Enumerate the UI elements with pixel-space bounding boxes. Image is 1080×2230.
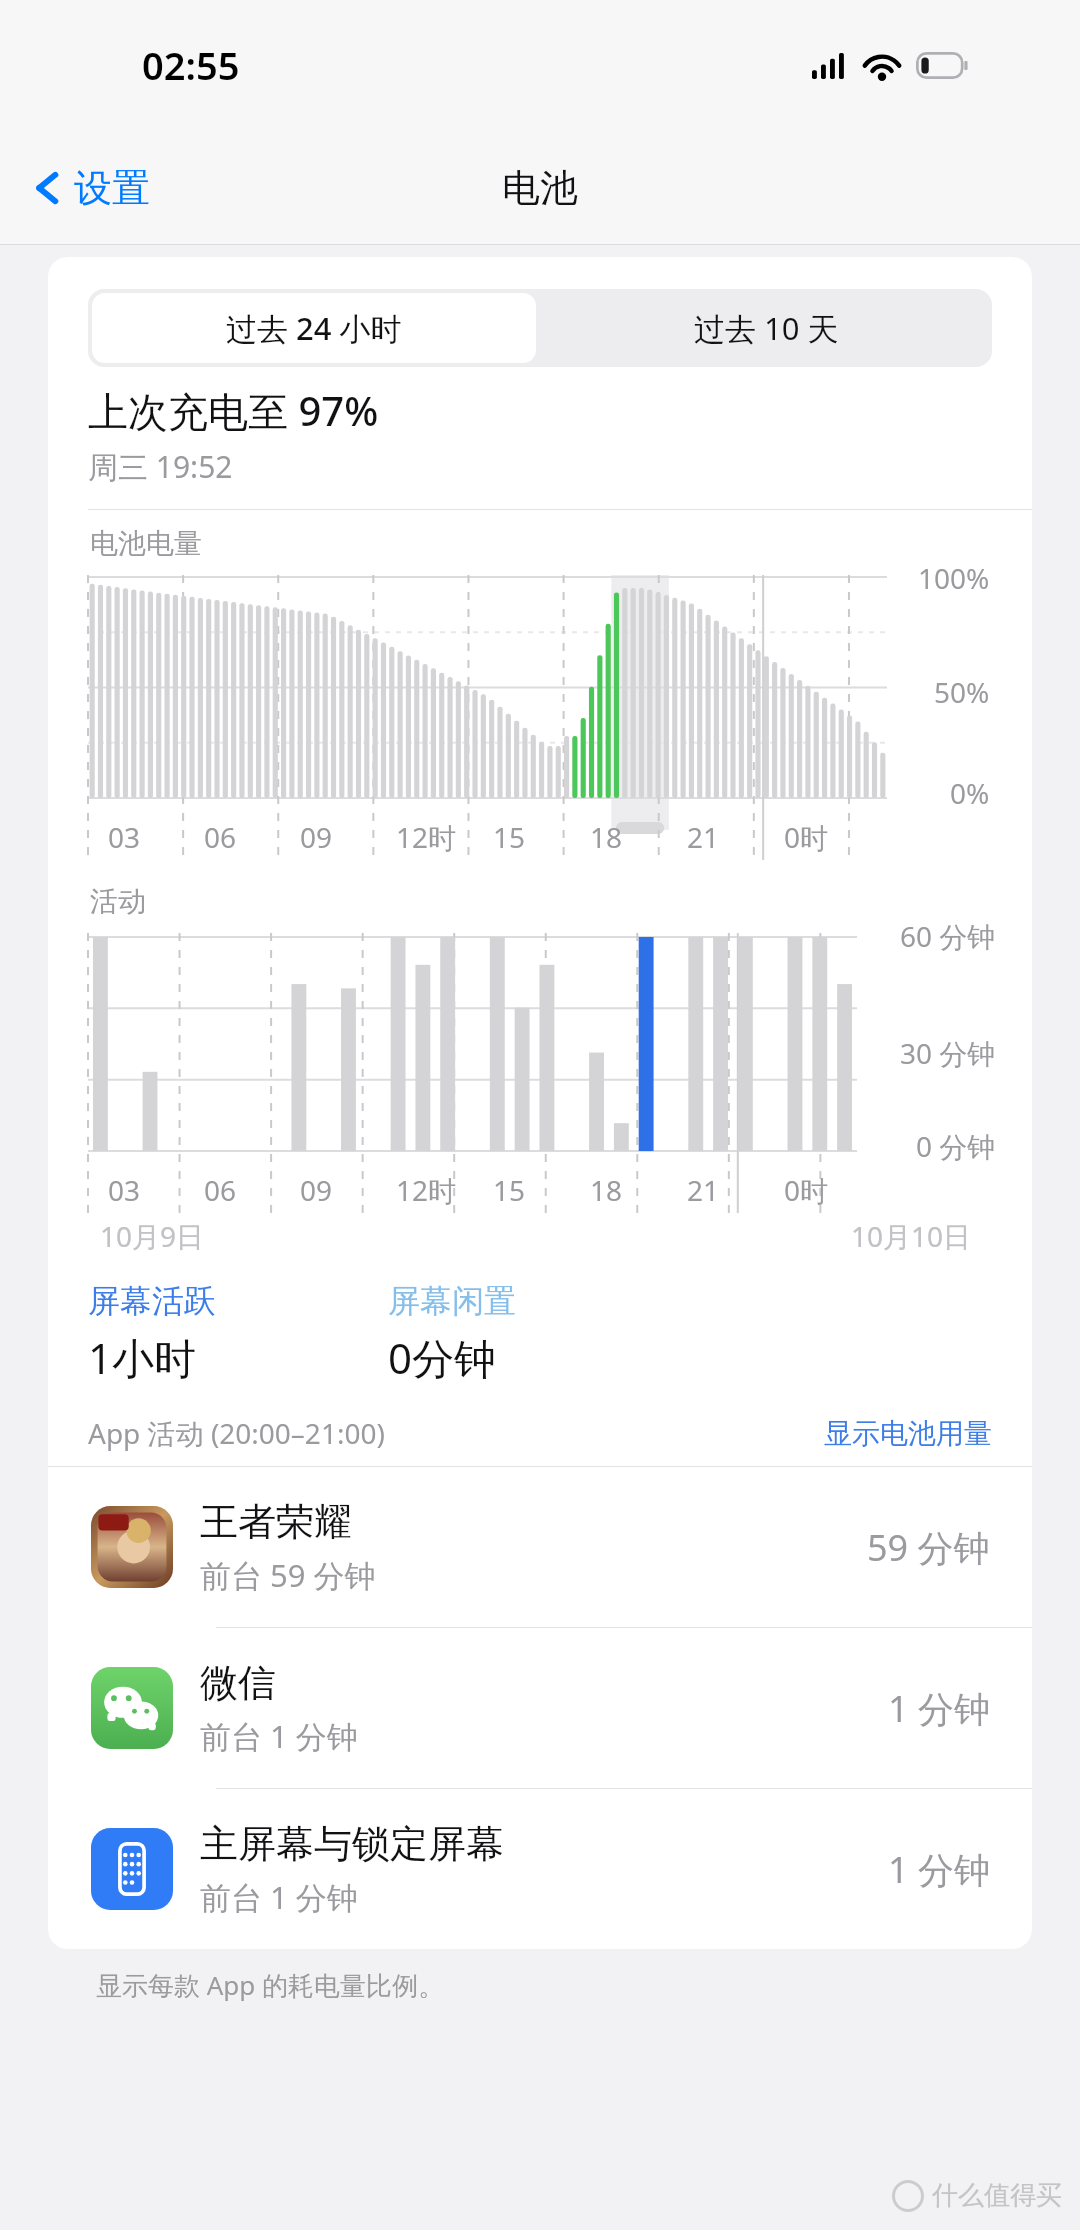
staticText: 02:55 xyxy=(142,39,240,91)
staticText: App 活动 (20:00–21:00) xyxy=(88,1414,385,1452)
staticText: 18 xyxy=(590,1171,623,1209)
button[interactable]: 显示电池用量 xyxy=(824,1416,992,1451)
staticText: 09 xyxy=(300,818,333,856)
staticText: 前台 59 分钟 xyxy=(200,1554,376,1596)
staticText: 15 xyxy=(493,1171,526,1209)
staticText: 电池电量 xyxy=(90,526,202,561)
button[interactable]: 王者荣耀 xyxy=(48,1467,1032,1627)
button[interactable]: 设置 xyxy=(26,156,158,220)
staticText: 周三 19:52 xyxy=(88,446,233,487)
staticText: 微信 xyxy=(200,1659,276,1707)
button[interactable]: 微信 xyxy=(48,1628,1032,1788)
staticText: 显示每款 App 的耗电量比例。 xyxy=(96,1967,445,2003)
staticText: 什么值得买 xyxy=(932,2179,1062,2212)
staticText: 主屏幕与锁定屏幕 xyxy=(200,1820,504,1868)
staticText: 0时 xyxy=(784,1171,829,1209)
staticText: 50% xyxy=(934,673,990,711)
staticText: 03 xyxy=(108,818,141,856)
staticText: 21 xyxy=(687,818,720,856)
staticText: 10月9日 xyxy=(100,1217,205,1255)
staticText: 100% xyxy=(918,559,990,597)
staticText: 过去 24 小时 xyxy=(226,307,402,349)
staticText: 15 xyxy=(493,818,526,856)
staticText: 09 xyxy=(300,1171,333,1209)
staticText: 设置 xyxy=(74,164,150,212)
button[interactable]: 主屏幕与锁定屏幕 xyxy=(48,1789,1032,1949)
staticText: 1 分钟 xyxy=(888,1684,990,1733)
staticText: 1 分钟 xyxy=(888,1845,990,1894)
staticText: 过去 10 天 xyxy=(694,307,839,349)
staticText: 电池 xyxy=(502,164,578,212)
staticText: 12时 xyxy=(396,818,457,856)
staticText: 0分钟 xyxy=(388,1329,497,1386)
staticText: 12时 xyxy=(396,1171,457,1209)
staticText: 0 分钟 xyxy=(916,1127,996,1165)
button[interactable]: 过去 10 天 xyxy=(540,289,992,367)
staticText: 06 xyxy=(204,1171,237,1209)
staticText: 03 xyxy=(108,1171,141,1209)
staticText: 30 分钟 xyxy=(900,1034,996,1072)
staticText: 06 xyxy=(204,818,237,856)
staticText: 21 xyxy=(687,1171,720,1209)
staticText: 上次充电至 97% xyxy=(88,383,379,438)
staticText: 0% xyxy=(950,774,990,812)
staticText: 显示电池用量 xyxy=(824,1416,992,1451)
staticText: 0时 xyxy=(784,818,829,856)
staticText: 60 分钟 xyxy=(900,917,996,955)
staticText: 王者荣耀 xyxy=(200,1498,352,1546)
button[interactable]: 过去 24 小时 xyxy=(92,293,536,363)
staticText: 屏幕活跃 xyxy=(88,1281,216,1321)
staticText: 1小时 xyxy=(88,1329,197,1386)
staticText: 10月10日 xyxy=(851,1217,972,1255)
staticText: 59 分钟 xyxy=(867,1523,990,1572)
staticText: 活动 xyxy=(90,884,146,919)
staticText: 前台 1 分钟 xyxy=(200,1715,358,1757)
staticText: 前台 1 分钟 xyxy=(200,1876,358,1918)
staticText: 18 xyxy=(590,818,623,856)
staticText: 屏幕闲置 xyxy=(388,1281,516,1321)
